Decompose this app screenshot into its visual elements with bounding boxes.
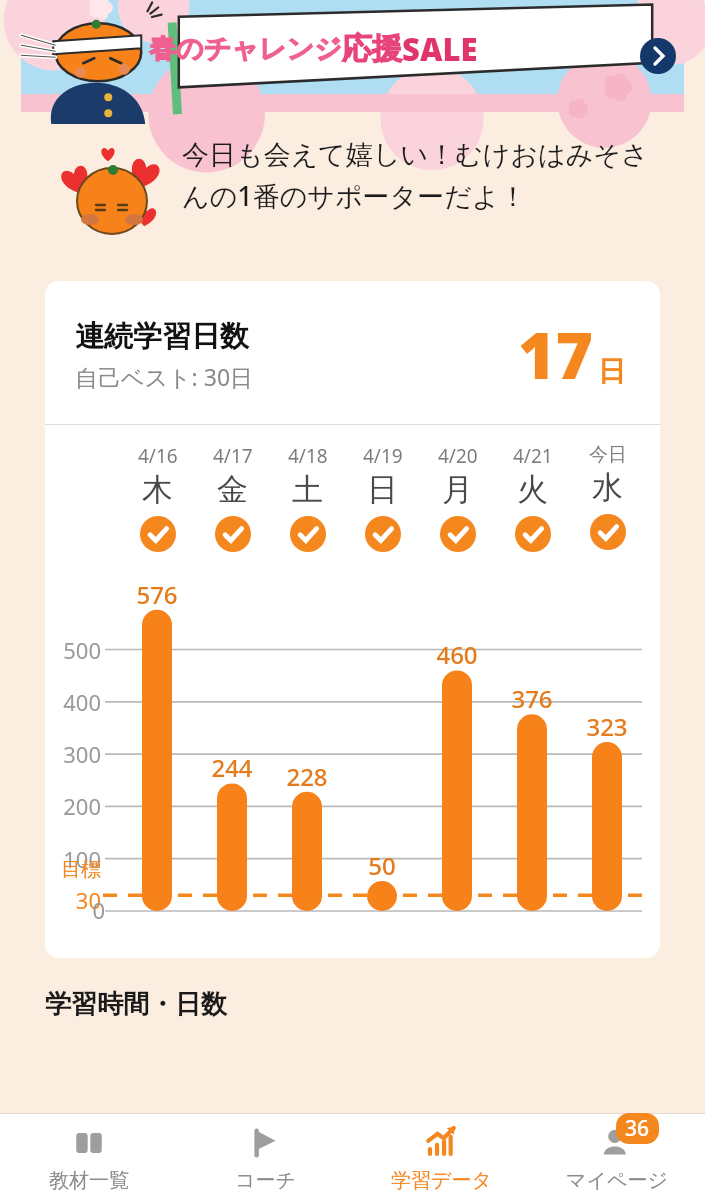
staticText: 4/18 (288, 443, 328, 469)
staticText: 228 (270, 760, 344, 793)
staticText: 応援 (342, 30, 402, 68)
staticText: 500 (53, 635, 101, 665)
staticText: 4/21 (513, 443, 553, 469)
button[interactable]: 36 (529, 1114, 705, 1200)
staticText: 36 (625, 1114, 650, 1143)
staticText: 50 (345, 849, 419, 882)
button[interactable]: 連続学習日数 (45, 281, 660, 958)
staticText: 200 (53, 791, 101, 821)
staticText: 323 (570, 710, 644, 743)
staticText: 376 (495, 682, 569, 715)
staticText: SALE (402, 28, 478, 70)
staticText: 400 (53, 687, 101, 717)
staticText: 300 (53, 739, 101, 769)
staticText: コーチ (235, 1168, 296, 1193)
staticText: 自己ベスト: 30日 (75, 361, 254, 392)
button[interactable]: コーチ (177, 1114, 353, 1200)
staticText: 学習時間・日数 (45, 988, 227, 1021)
staticText: 日 (598, 354, 626, 389)
button[interactable]: セール詳細を見る (640, 38, 676, 74)
staticText: 576 (120, 578, 194, 611)
staticText: 460 (420, 638, 494, 671)
staticText: 水 (592, 468, 623, 507)
staticText: マイページ (566, 1168, 668, 1193)
staticText: 244 (195, 751, 269, 784)
staticText: 日 (367, 470, 398, 509)
staticText: 火 (517, 470, 548, 509)
staticText: 4/17 (213, 443, 253, 469)
staticText: 月 (442, 470, 473, 509)
staticText: 今日 (589, 443, 627, 467)
button[interactable]: 春のチャレンジ応援SALE (21, 0, 684, 112)
staticText: 4/20 (438, 443, 478, 469)
button[interactable]: 教材一覧 (0, 1114, 177, 1200)
staticText: 0 (65, 895, 105, 925)
staticText: 教材一覧 (49, 1168, 129, 1193)
staticText: 土 (292, 470, 323, 509)
staticText: 30 (53, 885, 101, 915)
button[interactable]: 学習データ (353, 1114, 529, 1200)
staticText: 4/19 (363, 443, 403, 469)
staticText: 連続学習日数 (75, 318, 249, 355)
staticText: 17 (518, 311, 594, 398)
staticText: 100 (53, 844, 101, 874)
staticText: 学習データ (391, 1168, 492, 1193)
staticText: 4/16 (138, 443, 178, 469)
staticText: 金 (217, 470, 248, 509)
staticText: 目標 (53, 857, 101, 882)
staticText: 今日も会えて嬉しい！むけおはみそさんの1番のサポーターだよ！ (182, 138, 653, 214)
staticText: 木 (142, 470, 173, 509)
staticText: 春のチャレンジ (149, 32, 342, 66)
